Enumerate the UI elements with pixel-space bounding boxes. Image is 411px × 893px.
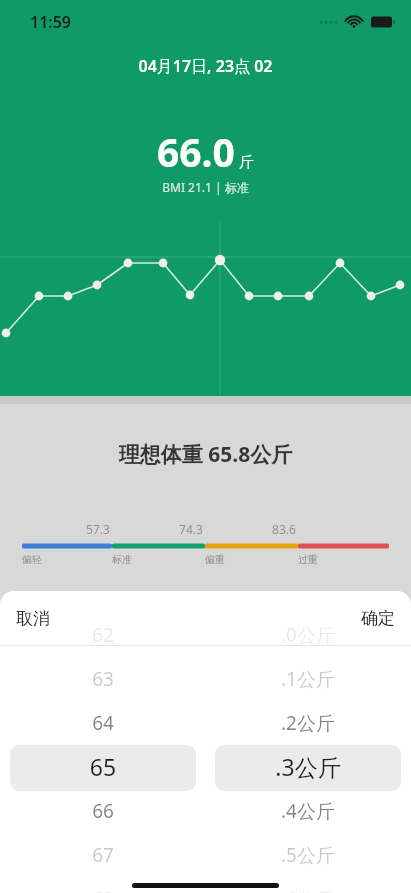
staticText: 04月17日, 23点 02 [0, 55, 411, 77]
staticText: 确定 [361, 608, 395, 629]
staticText: .2公斤 [253, 710, 363, 736]
staticText: 64 [48, 710, 158, 736]
staticText: 斤 [239, 153, 254, 172]
button[interactable]: 确定 [345, 596, 411, 641]
staticText: .6公斤 [253, 886, 363, 893]
staticText: BMI 21.1 | 标准 [0, 179, 411, 195]
staticText: .1公斤 [253, 666, 363, 692]
button[interactable]: Select value [215, 745, 401, 791]
staticText: 83.6 [264, 521, 304, 537]
staticText: 过重 [298, 553, 318, 566]
staticText: 67 [48, 842, 158, 868]
staticText: .4公斤 [253, 798, 363, 824]
staticText: 标准 [112, 553, 132, 566]
staticText: 66 [48, 798, 158, 824]
staticText: 68 [48, 886, 158, 893]
staticText: .0公斤 [253, 622, 363, 648]
staticText: 取消 [16, 608, 50, 629]
staticText: 理想体重 65.8公斤 [0, 440, 411, 469]
staticText: 66.0 [157, 125, 235, 178]
staticText: 74.3 [171, 521, 211, 537]
button[interactable]: Select value [10, 745, 196, 791]
staticText: 偏轻 [22, 553, 42, 566]
staticText: 11:59 [30, 11, 72, 33]
button[interactable]: 取消 [0, 596, 66, 641]
staticText: 62 [48, 622, 158, 648]
staticText: 偏重 [205, 553, 225, 566]
staticText: 65 [48, 751, 158, 782]
staticText: .3公斤 [253, 751, 363, 782]
staticText: 57.3 [78, 521, 118, 537]
staticText: .5公斤 [253, 842, 363, 868]
staticText: 63 [48, 666, 158, 692]
